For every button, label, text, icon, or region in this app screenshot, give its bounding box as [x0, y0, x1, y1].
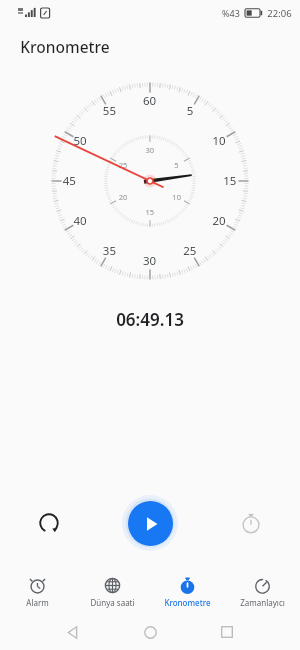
button[interactable]: Ana ekran — [133, 615, 167, 649]
button[interactable]: Kronometre — [150, 574, 225, 608]
staticText: Alarm — [26, 597, 49, 608]
staticText: Zamanlayıcı — [240, 597, 285, 608]
button[interactable]: Dünya saati — [75, 574, 150, 608]
staticText: Dünya saati — [90, 597, 135, 608]
staticText: 22:06 — [267, 7, 292, 20]
staticText: %43 — [222, 7, 240, 19]
staticText: 06:49.13 — [116, 308, 184, 331]
button[interactable]: Başlat — [128, 501, 173, 546]
button[interactable]: Geri — [56, 615, 90, 649]
button[interactable]: Alarm — [0, 574, 75, 608]
staticText: Kronometre — [164, 597, 211, 608]
button[interactable]: Sıfırla — [26, 500, 72, 546]
button[interactable]: Son kullanılanlar — [210, 615, 244, 649]
button[interactable]: Tur — [228, 500, 274, 546]
button[interactable]: Zamanlayıcı — [225, 574, 300, 608]
staticText: Kronometre — [20, 36, 110, 57]
